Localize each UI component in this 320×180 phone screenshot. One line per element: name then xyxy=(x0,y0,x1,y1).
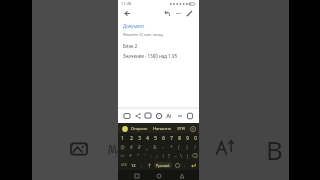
button[interactable]: ₽ xyxy=(135,142,143,151)
button[interactable]: Voice input xyxy=(121,125,128,132)
staticText: \ xyxy=(180,153,182,159)
button[interactable]: 2 xyxy=(127,133,135,142)
button[interactable]: # xyxy=(127,142,135,151)
staticText: + xyxy=(170,144,173,150)
staticText: Открыть xyxy=(131,126,148,131)
staticText: ? xyxy=(168,153,170,159)
button[interactable]: \ xyxy=(178,151,184,160)
staticText: ; xyxy=(156,153,158,159)
button[interactable]: Numbers xyxy=(129,160,138,170)
staticText: 2 xyxy=(130,135,133,141)
button[interactable]: 3 xyxy=(135,133,143,142)
staticText: Значение · 1500 над 1.95 xyxy=(123,53,178,59)
staticText: | xyxy=(186,153,189,159)
staticText: =\< xyxy=(120,154,125,158)
button[interactable]: " xyxy=(134,151,141,160)
button[interactable]: ) xyxy=(183,142,191,151)
button[interactable]: / xyxy=(191,142,199,151)
button[interactable]: Emoji xyxy=(173,160,181,170)
button[interactable]: Backspace xyxy=(190,151,199,160)
button[interactable]: 9 xyxy=(183,133,191,142)
staticText: / xyxy=(194,144,196,150)
button[interactable]: 8 xyxy=(175,133,183,142)
staticText: 4 xyxy=(146,135,149,141)
button[interactable]: 1 xyxy=(118,133,127,142)
button[interactable]: Symbols xyxy=(118,151,127,160)
button[interactable]: 5 xyxy=(151,133,159,142)
button[interactable]: Написать xyxy=(153,126,172,131)
staticText: _ xyxy=(146,144,148,150)
button[interactable]: Handwriting xyxy=(108,136,118,162)
staticText: Русский xyxy=(156,163,170,168)
button[interactable]: ( xyxy=(175,142,183,151)
button[interactable]: ; xyxy=(154,151,160,160)
staticText: ~ xyxy=(174,153,177,159)
button[interactable]: _ xyxy=(143,142,151,151)
staticText: 9 xyxy=(186,135,189,141)
staticText: 0 xyxy=(194,135,197,141)
staticText: : xyxy=(150,153,152,159)
button[interactable]: Edit xyxy=(184,8,195,19)
button[interactable]: Recents xyxy=(132,171,141,180)
staticText: ЭТИ xyxy=(177,126,185,131)
staticText: . xyxy=(184,162,186,168)
staticText: ₽ xyxy=(138,144,141,150)
button[interactable]: @ xyxy=(118,142,127,151)
button[interactable]: Image xyxy=(68,138,90,160)
button[interactable]: | xyxy=(184,151,190,160)
button[interactable]: Letters xyxy=(118,160,129,170)
button[interactable]: & xyxy=(151,142,159,151)
button[interactable]: Comment xyxy=(143,111,153,121)
staticText: B xyxy=(266,132,283,162)
button[interactable]: Русский xyxy=(154,162,172,168)
button[interactable]: Back xyxy=(177,171,186,180)
button[interactable]: Undo xyxy=(162,8,173,19)
staticText: Изменён 12 мин. назад xyxy=(123,32,163,37)
staticText: * xyxy=(129,153,132,159)
button[interactable]: 4 xyxy=(143,133,151,142)
button[interactable]: Voice xyxy=(145,160,153,170)
button[interactable]: ? xyxy=(166,151,172,160)
button[interactable]: Enter xyxy=(188,160,199,170)
button[interactable]: : xyxy=(148,151,154,160)
staticText: Блок 2 xyxy=(123,43,138,49)
staticText: 8 xyxy=(178,135,181,141)
button[interactable]: ЭТИ xyxy=(177,126,185,131)
button[interactable]: - xyxy=(159,142,167,151)
staticText: - xyxy=(162,144,164,150)
staticText: 6 xyxy=(162,135,165,141)
button[interactable]: Home xyxy=(154,171,163,180)
staticText: 7 xyxy=(170,135,173,141)
button[interactable]: ' xyxy=(141,151,148,160)
staticText: АБВ xyxy=(121,163,127,167)
staticText: ' xyxy=(144,153,146,159)
staticText: " xyxy=(137,153,139,159)
button[interactable]: . xyxy=(181,160,188,170)
button[interactable]: ! xyxy=(160,151,166,160)
button[interactable]: Format xyxy=(164,111,174,121)
button[interactable]: Text size xyxy=(213,135,237,159)
staticText: 5 xyxy=(154,135,157,141)
button[interactable]: , xyxy=(138,160,145,170)
button[interactable]: Keyboard settings xyxy=(189,125,196,132)
button[interactable]: 6 xyxy=(159,133,167,142)
button[interactable]: Print xyxy=(185,111,195,121)
button[interactable]: 7 xyxy=(167,133,175,142)
button[interactable]: Keyboard xyxy=(122,111,132,121)
button[interactable]: More xyxy=(175,111,185,121)
button[interactable]: ~ xyxy=(172,151,178,160)
button[interactable]: Emoji xyxy=(154,111,164,121)
staticText: & xyxy=(153,144,157,150)
button[interactable]: Bold xyxy=(259,132,289,162)
button[interactable]: + xyxy=(167,142,175,151)
staticText: 11:48 xyxy=(121,1,132,6)
button[interactable]: * xyxy=(127,151,134,160)
button[interactable]: Открыть xyxy=(131,126,148,131)
button[interactable]: Share xyxy=(133,111,143,121)
staticText: 1 xyxy=(121,135,124,141)
button[interactable]: Back xyxy=(122,8,133,19)
button[interactable]: 0 xyxy=(191,133,199,142)
staticText: , xyxy=(141,162,143,168)
button[interactable]: Redo xyxy=(173,8,184,19)
staticText: Документ xyxy=(123,23,145,29)
